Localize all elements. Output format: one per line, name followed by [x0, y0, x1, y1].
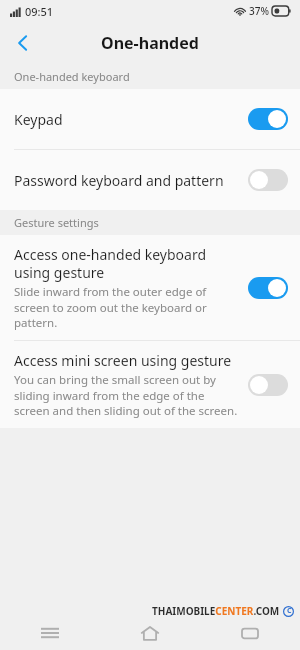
staticText: THAIMOBILECENTER.COM — [152, 604, 280, 618]
button[interactable]: Menu — [0, 616, 100, 650]
staticText: Access one-handed keyboard using gesture — [14, 245, 238, 282]
staticText: 37% — [249, 4, 269, 18]
staticText: One-handed keyboard — [14, 69, 130, 84]
staticText: C — [287, 606, 292, 616]
button[interactable]: Access one-handed keyboard using gesture — [0, 235, 300, 340]
button[interactable]: Password keyboard and pattern — [0, 150, 300, 210]
button[interactable]: Toggle off — [248, 374, 288, 396]
staticText: You can bring the small screen out by sl… — [14, 372, 238, 418]
button[interactable]: Back — [0, 22, 44, 64]
button[interactable]: Toggle off — [248, 169, 288, 191]
button[interactable]: Toggle on — [248, 108, 288, 130]
button[interactable]: Access mini screen using gesture — [0, 341, 300, 428]
button[interactable]: Toggle on — [248, 277, 288, 299]
staticText: One-handed — [101, 32, 199, 54]
button[interactable]: Keypad — [0, 89, 300, 149]
staticText: Keypad — [14, 110, 63, 129]
staticText: Slide inward from the outer edge of scre… — [14, 284, 238, 330]
button[interactable]: Home — [100, 616, 200, 650]
staticText: 09:51 — [25, 4, 54, 19]
staticText: Password keyboard and pattern — [14, 171, 224, 190]
button[interactable]: Recent apps — [200, 616, 300, 650]
staticText: Gesture settings — [14, 215, 99, 230]
staticText: Access mini screen using gesture — [14, 351, 232, 370]
